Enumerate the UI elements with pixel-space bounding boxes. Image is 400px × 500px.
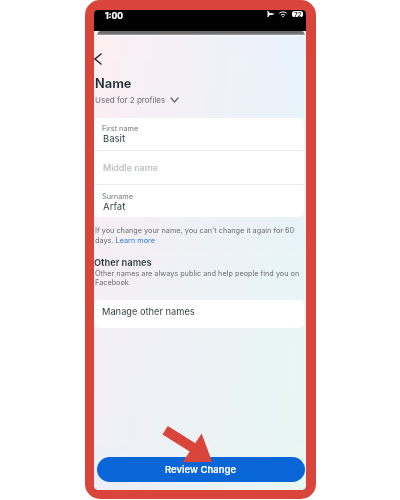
staticText: Surname [102,192,133,201]
button[interactable]: Surname [94,185,304,216]
button[interactable]: Back [94,49,108,69]
staticText: Other names are always public and help p… [95,269,302,287]
staticText: Name [95,76,132,91]
staticText: Manage other names [102,306,195,317]
staticText: Other names [94,257,152,268]
button[interactable]: Middle name [94,151,304,184]
button[interactable]: Manage other names [94,300,304,328]
other: Airplane mode [267,11,275,17]
staticText: Review Change [165,464,237,476]
other: Wi-Fi [279,11,287,17]
button[interactable]: Review Change [97,457,305,482]
staticText: 72 [294,11,302,17]
staticText: Arfat [103,201,126,212]
staticText: Basit [103,133,126,144]
button[interactable]: First name [94,118,304,150]
button[interactable]: If you change your name, you can't chang… [95,226,302,244]
staticText: 1:00 [105,11,124,21]
staticText: First name [102,124,139,133]
button[interactable]: Used for 2 profiles [95,95,178,105]
staticText: Middle name [103,162,158,173]
staticText: Used for 2 profiles [95,95,166,105]
